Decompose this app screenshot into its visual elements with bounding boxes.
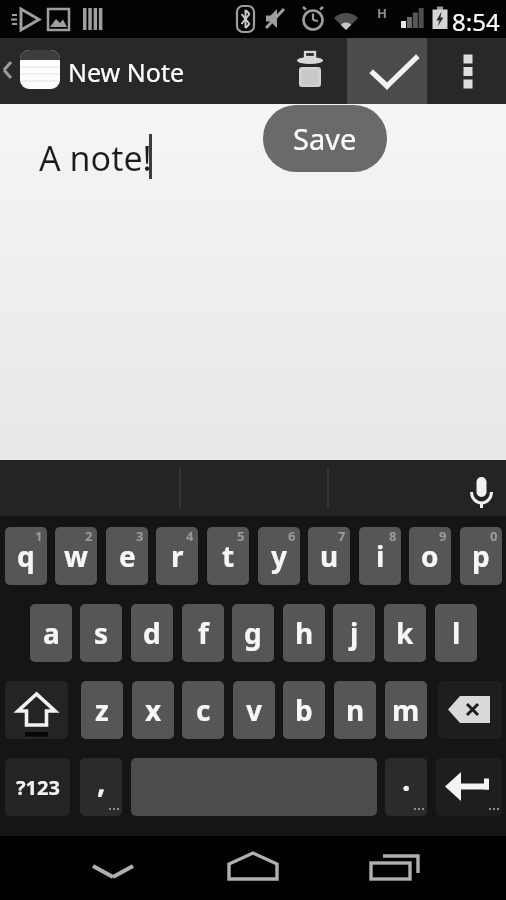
button[interactable]: f [182, 604, 224, 662]
button[interactable] [438, 681, 502, 739]
button[interactable]: n [334, 681, 376, 739]
button[interactable] [284, 38, 340, 104]
staticText: , [97, 761, 106, 802]
staticText: f [198, 614, 209, 652]
button[interactable] [436, 758, 502, 816]
staticText: o [421, 537, 439, 575]
staticText: l [452, 614, 461, 652]
button[interactable]: l [435, 604, 477, 662]
button[interactable]: i [359, 527, 401, 585]
staticText: . [402, 759, 411, 800]
button[interactable]: o [409, 527, 451, 585]
button[interactable]: q [5, 527, 47, 585]
button[interactable]: . [385, 758, 427, 816]
staticText: New Note [68, 55, 185, 89]
button[interactable] [347, 38, 427, 104]
button[interactable] [83, 846, 143, 890]
button[interactable]: r [156, 527, 198, 585]
button[interactable]: p [460, 527, 502, 585]
staticText: p [472, 537, 490, 575]
button[interactable]: g [232, 604, 274, 662]
button[interactable] [458, 468, 502, 512]
staticText: b [295, 691, 313, 729]
staticText: e [119, 537, 136, 575]
staticText: z [95, 691, 109, 729]
button[interactable]: w [55, 527, 97, 585]
staticText: c [196, 691, 211, 729]
button[interactable]: x [132, 681, 174, 739]
staticText: i [376, 537, 385, 575]
button[interactable]: h [283, 604, 325, 662]
button[interactable]: u [308, 527, 350, 585]
staticText: k [396, 614, 414, 652]
staticText: m [392, 691, 420, 729]
staticText: Save [293, 119, 357, 158]
button[interactable]: m [385, 681, 427, 739]
button[interactable]: y [258, 527, 300, 585]
staticText: s [94, 614, 109, 652]
button[interactable]: Save [263, 105, 387, 172]
button[interactable] [5, 681, 68, 739]
staticText: 7 [338, 527, 346, 545]
staticText: 6 [288, 527, 296, 545]
staticText: a [43, 614, 60, 652]
staticText: w [64, 537, 88, 575]
staticText: d [143, 614, 161, 652]
button[interactable]: a [30, 604, 72, 662]
staticText: x [145, 691, 162, 729]
button[interactable]: k [384, 604, 426, 662]
staticText: 8:54 [452, 5, 500, 38]
button[interactable]: ?123 [5, 758, 70, 816]
button[interactable]: c [182, 681, 224, 739]
button[interactable]: b [283, 681, 325, 739]
staticText: 5 [237, 527, 245, 545]
staticText: j [350, 614, 359, 652]
staticText: ?123 [16, 774, 60, 801]
button[interactable]: s [80, 604, 122, 662]
staticText: 4 [186, 527, 194, 545]
staticText: 3 [136, 527, 144, 545]
staticText: r [171, 537, 184, 575]
button[interactable]: j [333, 604, 375, 662]
button[interactable]: t [207, 527, 249, 585]
staticText: g [244, 614, 262, 652]
staticText: 9 [439, 527, 447, 545]
button[interactable] [363, 846, 423, 890]
staticText: n [346, 691, 365, 729]
button[interactable]: , [80, 758, 122, 816]
staticText: 2 [85, 527, 93, 545]
staticText: y [271, 537, 287, 575]
staticText: v [246, 691, 262, 729]
button[interactable]: v [233, 681, 275, 739]
button[interactable] [223, 846, 283, 890]
staticText: h [295, 614, 314, 652]
staticText: 0 [490, 527, 498, 545]
staticText: 1 [35, 527, 43, 545]
button[interactable]: e [106, 527, 148, 585]
staticText: q [17, 537, 35, 575]
staticText: 8 [389, 527, 397, 545]
button[interactable] [0, 38, 18, 104]
staticText: t [222, 537, 235, 575]
staticText: u [320, 537, 339, 575]
button[interactable] [428, 38, 506, 104]
staticText: A note! [39, 135, 152, 181]
staticText: H [377, 4, 387, 22]
button[interactable]: z [81, 681, 123, 739]
button[interactable]: d [131, 604, 173, 662]
